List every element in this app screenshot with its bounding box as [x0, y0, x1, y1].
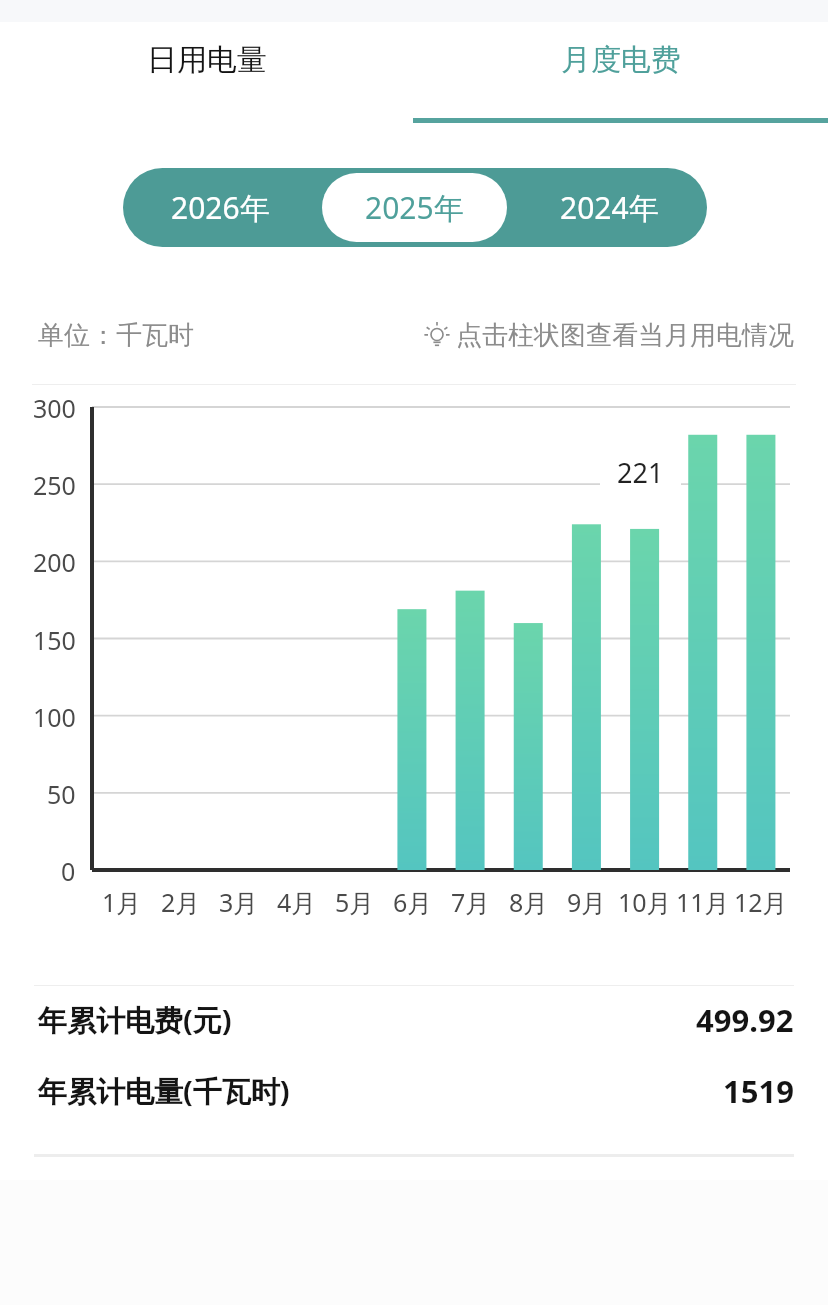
staticText: 3月	[219, 885, 259, 919]
button[interactable]: 年累计电费(元)	[0, 986, 828, 1054]
staticText: 年累计电量(千瓦时)	[38, 1071, 290, 1111]
staticText: 50	[47, 777, 76, 811]
staticText: 2024年	[560, 187, 659, 228]
staticText: 2025年	[365, 187, 464, 228]
staticText: 11月	[676, 885, 730, 919]
button[interactable]: 2024年	[517, 173, 702, 242]
staticText: 4月	[277, 885, 317, 919]
staticText: 5月	[335, 885, 375, 919]
staticText: 200	[33, 545, 76, 579]
staticText: 7月	[451, 885, 491, 919]
staticText: 8月	[509, 885, 549, 919]
other: 提示	[422, 321, 452, 351]
staticText: 100	[33, 700, 76, 734]
staticText: 点击柱状图查看当月用电情况	[456, 319, 794, 352]
staticText: 日用电量	[147, 41, 267, 79]
button[interactable]: 2025年	[322, 173, 507, 242]
button[interactable]: 提示	[422, 319, 794, 352]
staticText: 300	[33, 391, 76, 425]
staticText: 年累计电费(元)	[38, 1000, 232, 1040]
staticText: 2月	[161, 885, 201, 919]
staticText: 月度电费	[561, 41, 681, 79]
button[interactable]: 月度电费	[414, 22, 828, 123]
staticText: 6月	[393, 885, 433, 919]
staticText: 250	[33, 468, 76, 502]
staticText: 0	[61, 854, 76, 888]
staticText: 1月	[102, 885, 142, 919]
staticText: 221	[617, 454, 664, 491]
staticText: 9月	[567, 885, 607, 919]
staticText: 12月	[734, 885, 788, 919]
button[interactable]: 日用电量	[0, 22, 414, 123]
button[interactable]: 2026年	[128, 173, 312, 242]
staticText: 499.92	[696, 999, 794, 1041]
staticText: 1519	[723, 1070, 794, 1112]
staticText: 单位：千瓦时	[38, 319, 194, 352]
staticText: 10月	[618, 885, 672, 919]
button[interactable]: 年累计电量(千瓦时)	[0, 1054, 828, 1128]
staticText: 150	[33, 623, 76, 657]
staticText: 2026年	[171, 187, 270, 228]
